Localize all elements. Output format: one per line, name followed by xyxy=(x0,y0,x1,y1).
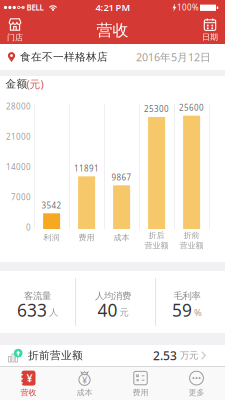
staticText: 营收 xyxy=(96,21,128,40)
staticText: 40 xyxy=(97,298,117,321)
staticText: 利润 xyxy=(44,233,60,242)
staticText: 费用 xyxy=(79,233,95,242)
staticText: 28000 xyxy=(6,101,31,112)
staticText: 毛利率 xyxy=(173,290,200,302)
staticText: (元) xyxy=(26,77,43,91)
staticText: 成本 xyxy=(76,388,92,397)
button[interactable]: 更多 xyxy=(168,366,224,400)
staticText: 金额 xyxy=(5,77,27,90)
button[interactable]: 折前营业额 xyxy=(0,345,225,366)
staticText: 14000 xyxy=(6,162,31,172)
button[interactable]: 门店 xyxy=(0,17,30,43)
staticText: 7000 xyxy=(11,192,31,202)
staticText: 营收 xyxy=(20,388,36,397)
staticText: 元 xyxy=(119,307,128,318)
staticText: % xyxy=(194,306,202,319)
staticText: 人 xyxy=(49,307,58,318)
staticText: BELL xyxy=(26,2,43,13)
staticText: 成本 xyxy=(114,233,130,242)
staticText: 100% xyxy=(177,2,199,13)
staticText: 59 xyxy=(172,298,192,321)
staticText: 费用 xyxy=(132,388,148,397)
staticText: ¥ xyxy=(26,371,32,385)
staticText: 食在不一样格林店 xyxy=(20,50,108,63)
staticText: 客流量 xyxy=(24,290,51,302)
staticText: 折后 xyxy=(149,230,165,240)
button[interactable]: 日期 xyxy=(195,17,225,43)
staticText: 25300 xyxy=(144,104,169,114)
staticText: 营业额 xyxy=(145,241,169,251)
staticText: 日期 xyxy=(202,32,218,42)
staticText: 4:21 PM xyxy=(95,1,130,14)
staticText: 人均消费 xyxy=(95,290,131,302)
staticText: 更多 xyxy=(188,388,204,397)
button[interactable]: ¥ xyxy=(56,366,112,400)
staticText: 折前 xyxy=(184,230,200,240)
staticText: 0 xyxy=(26,222,31,233)
staticText: 9867 xyxy=(112,172,132,183)
staticText: 3542 xyxy=(42,200,62,211)
button[interactable]: ¥ xyxy=(0,366,56,400)
staticText: 门店 xyxy=(7,33,23,42)
staticText: ¥ xyxy=(82,374,87,386)
button[interactable]: 食在不一样格林店 xyxy=(0,44,225,70)
staticText: 633 xyxy=(17,298,47,321)
staticText: 25600 xyxy=(179,102,204,113)
staticText: 2.53 xyxy=(153,347,177,363)
staticText: 11891 xyxy=(74,163,99,174)
button[interactable]: 费用 xyxy=(112,366,168,400)
staticText: 折前营业额 xyxy=(28,349,83,362)
staticText: 万元 xyxy=(180,350,198,361)
staticText: 营业额 xyxy=(180,241,204,251)
staticText: 2016年5月12日 xyxy=(136,50,211,64)
staticText: 21000 xyxy=(6,131,31,142)
